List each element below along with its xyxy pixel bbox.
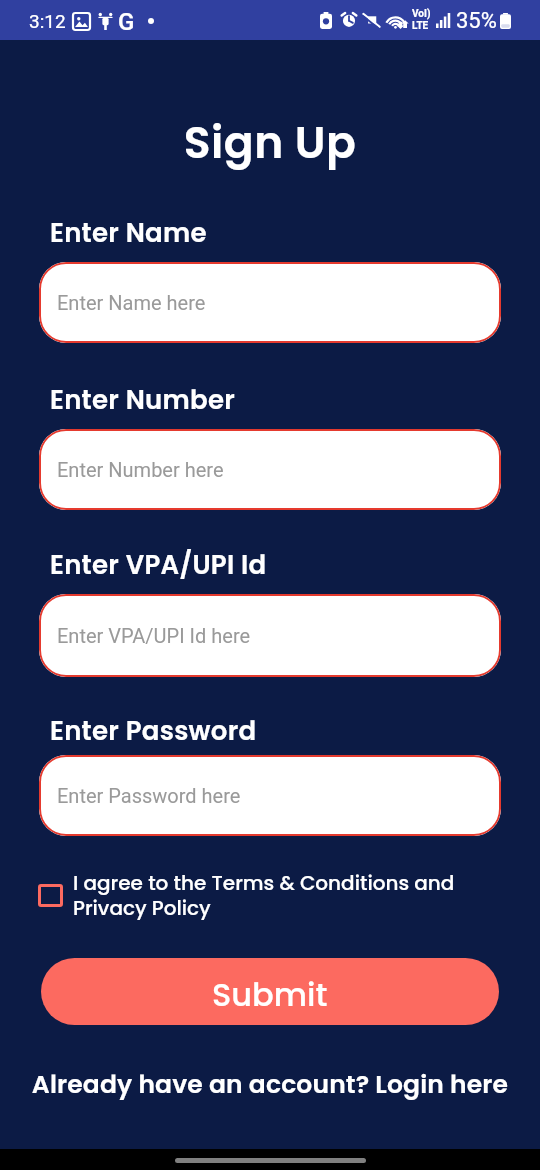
staticText: Enter Name here — [57, 291, 206, 314]
staticText: Enter VPA/UPI Id here — [57, 624, 251, 647]
button[interactable]: Enter Password here — [39, 755, 501, 836]
staticText: Submit — [212, 972, 328, 1017]
staticText: Enter VPA/UPI Id — [50, 547, 267, 583]
button[interactable]: Enter VPA/UPI Id here — [39, 594, 501, 677]
button[interactable]: Already have an account? Login here — [0, 1067, 540, 1102]
button[interactable]: Enter Number here — [39, 429, 501, 510]
staticText: 35% — [456, 8, 497, 34]
staticText: Enter Name — [50, 215, 207, 251]
staticText: Sign Up — [0, 112, 540, 174]
staticText: Enter Number here — [57, 458, 224, 481]
button[interactable]: Submit — [41, 958, 499, 1025]
staticText: Enter Number — [50, 382, 236, 418]
other: Agree to terms checkbox — [38, 884, 63, 907]
staticText: Enter Password here — [57, 784, 241, 807]
staticText: G — [118, 8, 135, 36]
staticText: VoI) LTE — [412, 8, 431, 31]
button[interactable]: Enter Name here — [39, 262, 501, 343]
staticText: Already have an account? Login here — [0, 1067, 540, 1102]
staticText: Enter Password — [50, 713, 257, 749]
staticText: 3:12 — [29, 10, 66, 32]
button[interactable]: Agree to terms checkbox — [38, 869, 468, 922]
staticText: I agree to the Terms & Conditions and Pr… — [73, 869, 468, 922]
